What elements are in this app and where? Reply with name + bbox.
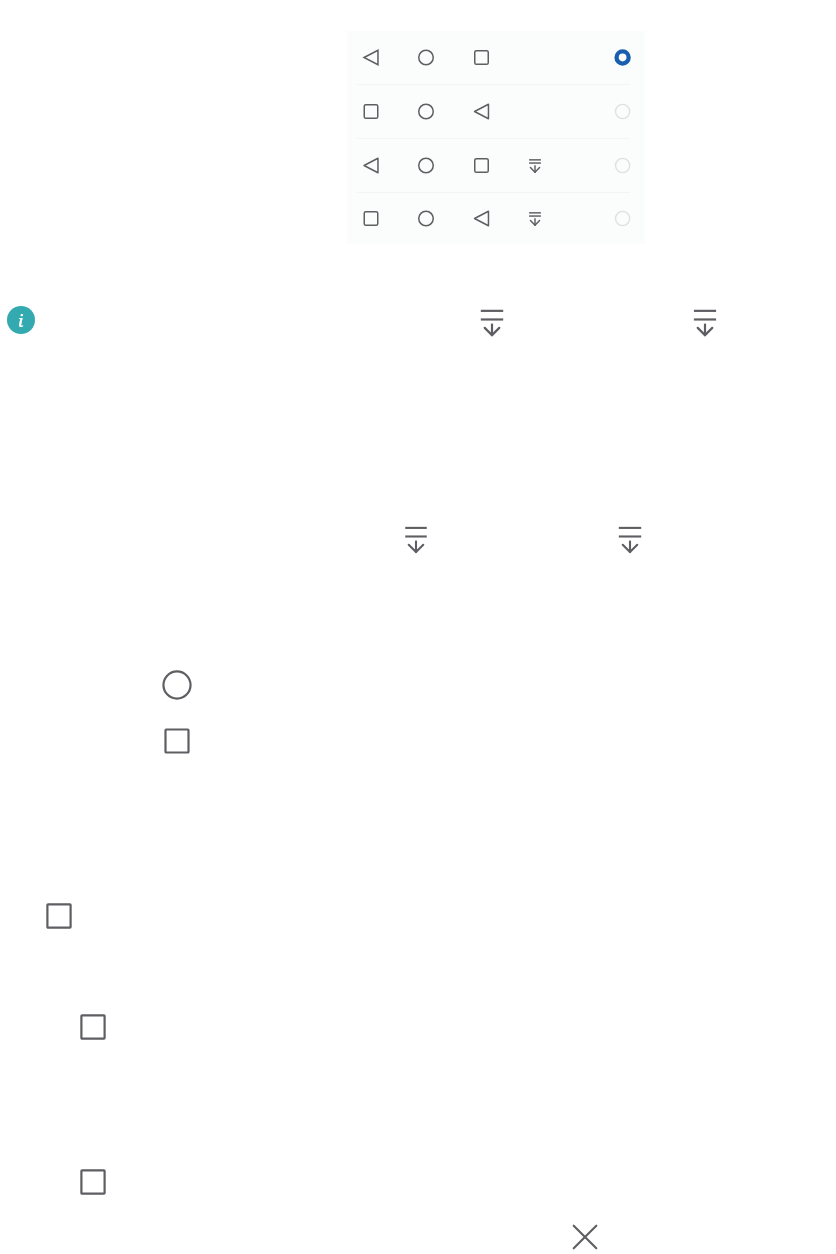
button[interactable]: Hide navigation bar [690,308,720,338]
button[interactable]: Recents, Home, Back, Hide navigation bar [347,193,645,244]
button[interactable]: Home [160,668,194,702]
button[interactable]: Recents [78,1167,108,1197]
button[interactable]: Close [569,1221,601,1253]
button[interactable]: Recents [78,1012,108,1042]
button[interactable]: Back, Home, Recents [347,31,645,84]
button[interactable]: Recents [44,901,74,931]
button[interactable]: Hide navigation bar [615,525,645,555]
button[interactable]: Back, Home, Recents, Hide navigation bar [347,139,645,192]
button[interactable]: Recents [162,726,192,756]
button[interactable]: Hide navigation bar [477,308,507,338]
button[interactable]: Information [7,306,35,334]
staticText: i [18,309,24,332]
button[interactable]: Recents, Home, Back [347,85,645,138]
button[interactable]: Hide navigation bar [401,525,431,555]
